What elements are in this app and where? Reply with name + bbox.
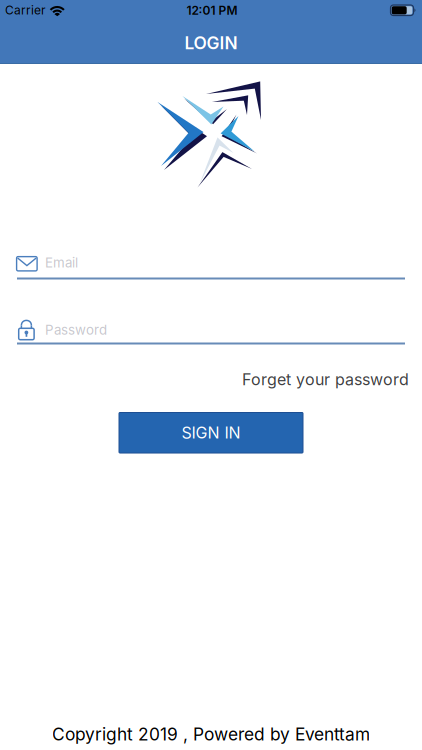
staticText: Carrier: [5, 3, 46, 17]
staticText: Forget your password: [242, 370, 409, 389]
button[interactable]: Password: [16, 315, 405, 344]
button[interactable]: Email: [16, 249, 405, 280]
staticText: Password: [45, 322, 107, 338]
staticText: Copyright 2019 , Powered by Eventtam: [52, 724, 370, 744]
staticText: 12:01 PM: [186, 3, 237, 18]
staticText: Email: [45, 255, 78, 270]
staticText: SIGN IN: [181, 423, 240, 442]
staticText: LOGIN: [184, 33, 237, 53]
button[interactable]: SIGN IN: [119, 412, 303, 453]
button[interactable]: Forget your password: [242, 370, 409, 389]
